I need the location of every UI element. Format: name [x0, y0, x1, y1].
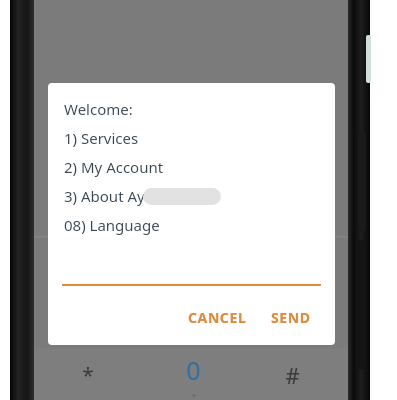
button[interactable]: CANCEL — [180, 302, 255, 333]
staticText: # — [285, 360, 300, 390]
staticText: SEND — [271, 308, 311, 327]
staticText: + — [191, 389, 197, 400]
staticText: 08) Language — [64, 215, 160, 235]
button[interactable]: SEND — [263, 302, 319, 333]
button[interactable]: Zero key — [165, 348, 221, 400]
staticText: * — [82, 361, 94, 390]
button[interactable]: Star key — [60, 352, 116, 398]
button[interactable]: Pound key — [264, 352, 320, 398]
staticText: 3) About Ay — [64, 186, 145, 206]
staticText: CANCEL — [188, 308, 247, 327]
staticText: 1) Services — [64, 128, 139, 148]
staticText: 2) My Account — [64, 157, 164, 177]
staticText: Welcome: — [64, 99, 133, 119]
staticText: 0 — [186, 353, 201, 387]
